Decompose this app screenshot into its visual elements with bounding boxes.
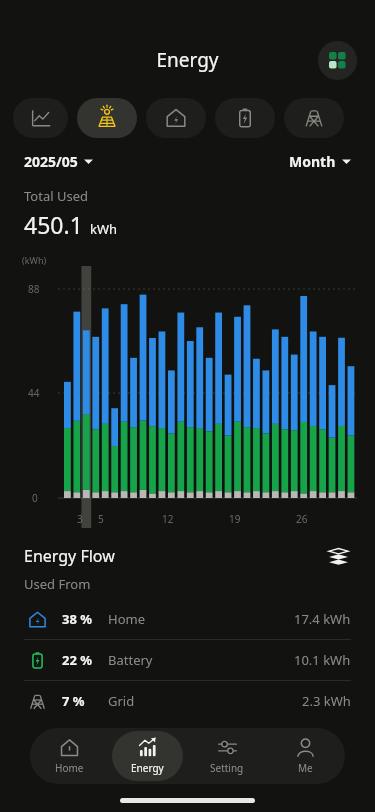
button[interactable]: Statistics [13, 98, 68, 138]
staticText: Home [108, 610, 145, 628]
button[interactable]: 7 % [0, 681, 375, 721]
button[interactable]: Energy [112, 731, 183, 781]
button[interactable]: 38 % [0, 599, 375, 639]
button[interactable]: 22 % [0, 640, 375, 680]
button[interactable]: Month [289, 152, 351, 171]
staticText: 3 [77, 512, 83, 526]
staticText: 26 [296, 512, 308, 526]
staticText: Energy [156, 47, 219, 73]
staticText: Energy [131, 761, 164, 775]
staticText: Month [289, 152, 336, 171]
staticText: Energy Flow [24, 545, 115, 567]
button[interactable]: Home [34, 731, 104, 781]
button[interactable]: Battery [215, 98, 275, 138]
button[interactable]: 2025/05 [24, 152, 93, 171]
button[interactable]: Solar [77, 98, 137, 138]
staticText: kWh [90, 220, 118, 238]
button[interactable]: Setting [191, 731, 262, 781]
staticText: 19 [229, 512, 241, 526]
staticText: 44 [28, 386, 40, 400]
staticText: 17.4 kWh [294, 610, 351, 628]
staticText: 5 [98, 512, 104, 526]
staticText: Me [298, 761, 313, 775]
staticText: 10.1 kWh [294, 651, 351, 669]
button[interactable]: Me [270, 731, 341, 781]
staticText: Home [55, 761, 84, 775]
staticText: 12 [162, 512, 174, 526]
staticText: 2025/05 [24, 152, 78, 171]
staticText: 88 [28, 282, 40, 296]
staticText: 7 % [62, 692, 85, 710]
staticText: Total Used [24, 187, 88, 205]
staticText: Grid [108, 692, 135, 710]
button[interactable]: Profile [318, 41, 357, 80]
button[interactable]: Layers [325, 543, 351, 569]
staticText: Used From [24, 575, 91, 593]
button[interactable]: Home [146, 98, 206, 138]
button[interactable]: Grid [284, 98, 344, 138]
staticText: 38 % [62, 610, 92, 628]
staticText: 450.1 [24, 209, 83, 240]
staticText: 22 % [62, 651, 92, 669]
staticText: Setting [210, 761, 244, 775]
staticText: Battery [108, 651, 153, 669]
staticText: 0 [32, 491, 38, 505]
staticText: 2.3 kWh [302, 692, 351, 710]
staticText: (kWh) [22, 254, 47, 266]
